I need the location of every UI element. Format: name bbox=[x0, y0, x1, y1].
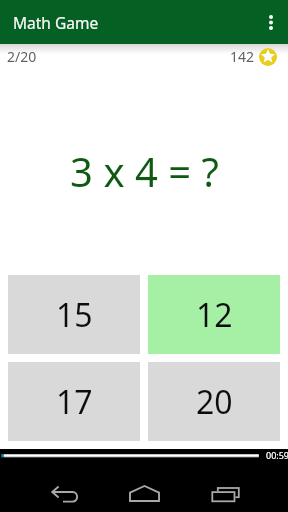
staticText: Math Game bbox=[13, 12, 99, 33]
button[interactable]: 12 bbox=[148, 275, 280, 354]
button[interactable]: Home bbox=[124, 478, 164, 508]
button[interactable]: 17 bbox=[8, 362, 140, 441]
button[interactable]: 20 bbox=[148, 362, 280, 441]
button[interactable]: Recent apps bbox=[205, 478, 245, 508]
button[interactable]: More options bbox=[254, 0, 288, 44]
staticText: 17 bbox=[56, 380, 93, 424]
staticText: 142 bbox=[230, 47, 255, 66]
button[interactable]: Back bbox=[44, 478, 84, 508]
staticText: 20 bbox=[196, 380, 233, 424]
button[interactable]: 15 bbox=[8, 275, 140, 354]
staticText: 00:59 bbox=[266, 449, 288, 461]
staticText: 15 bbox=[56, 293, 93, 337]
staticText: 3 x 4 = ? bbox=[70, 144, 219, 196]
staticText: 12 bbox=[196, 293, 233, 337]
staticText: 2/20 bbox=[7, 47, 37, 66]
